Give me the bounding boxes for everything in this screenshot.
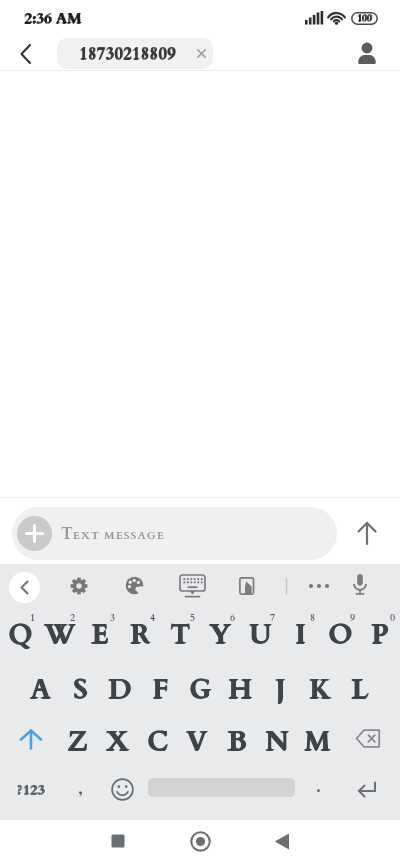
staticText: ?123 <box>18 781 46 799</box>
staticText: U <box>249 617 272 649</box>
button[interactable]: Z <box>57 723 97 755</box>
button[interactable]: X <box>97 723 137 755</box>
button[interactable]: D <box>100 671 140 703</box>
staticText: H <box>228 671 252 703</box>
staticText: Z <box>67 724 88 756</box>
button[interactable]: J <box>260 671 300 703</box>
button[interactable] <box>16 42 38 66</box>
button[interactable]: A <box>20 671 60 703</box>
button[interactable] <box>110 777 135 802</box>
staticText: W <box>44 617 76 649</box>
button[interactable]: Q <box>0 616 40 648</box>
staticText: S <box>74 671 89 703</box>
staticText: Y <box>209 617 231 649</box>
staticText: M <box>304 723 331 755</box>
button[interactable]: I <box>280 616 320 648</box>
button[interactable] <box>196 48 207 59</box>
button[interactable] <box>190 831 211 852</box>
button[interactable]: E <box>80 616 120 648</box>
button[interactable]: , <box>68 774 92 802</box>
staticText: X <box>106 723 129 755</box>
button[interactable]: S <box>60 671 100 703</box>
button[interactable] <box>111 834 125 848</box>
button[interactable] <box>16 727 46 751</box>
staticText: E <box>91 616 109 648</box>
staticText: TEXT MESSAGE <box>61 523 165 545</box>
button[interactable] <box>17 516 52 551</box>
button[interactable]: M <box>297 723 337 755</box>
button[interactable]: R <box>120 616 160 648</box>
staticText: 100 <box>357 12 372 25</box>
staticText: I <box>295 617 306 649</box>
button[interactable] <box>125 576 144 595</box>
button[interactable]: T <box>160 616 200 648</box>
staticText: M <box>305 723 332 755</box>
button[interactable]: L <box>340 671 380 703</box>
staticText: P <box>371 617 389 649</box>
staticText: U <box>250 616 273 648</box>
button[interactable]: O <box>320 616 360 648</box>
staticText: X <box>107 723 130 755</box>
button[interactable]: W <box>40 616 80 648</box>
staticText: G <box>190 671 212 703</box>
staticText: 0 <box>390 611 396 625</box>
staticText: S <box>73 671 88 703</box>
staticText: K <box>309 672 331 704</box>
button[interactable] <box>355 729 382 748</box>
button[interactable]: Y <box>200 616 240 648</box>
button[interactable]: U <box>240 616 280 648</box>
staticText: D <box>108 671 132 703</box>
staticText: 100 <box>358 12 373 25</box>
button[interactable]: G <box>180 671 220 703</box>
staticText: W <box>45 616 77 648</box>
staticText: L <box>351 671 369 703</box>
staticText: W <box>44 616 76 648</box>
button[interactable] <box>355 41 379 65</box>
button[interactable]: ?123 <box>8 777 54 803</box>
button[interactable] <box>274 833 290 850</box>
staticText: V <box>186 724 208 756</box>
staticText: N <box>265 724 289 756</box>
button[interactable]: B <box>217 723 257 755</box>
staticText: C <box>148 723 169 755</box>
staticText: J <box>275 671 286 703</box>
staticText: I <box>296 616 307 648</box>
staticText: P <box>371 616 389 648</box>
staticText: 2:36 AM <box>24 8 82 28</box>
button[interactable]: C <box>137 723 177 755</box>
button[interactable] <box>356 779 380 799</box>
staticText: N <box>266 723 290 755</box>
button[interactable] <box>9 572 40 603</box>
staticText: D <box>108 672 132 704</box>
staticText: H <box>228 672 252 704</box>
staticText: Z <box>67 723 88 755</box>
button[interactable] <box>308 583 330 589</box>
button[interactable] <box>351 573 369 598</box>
staticText: E <box>91 617 109 649</box>
staticText: K <box>309 671 331 703</box>
button[interactable]: F <box>140 671 180 703</box>
staticText: M <box>304 724 331 756</box>
button[interactable]: K <box>300 671 340 703</box>
staticText: 7 <box>270 611 276 625</box>
button[interactable]: H <box>220 671 260 703</box>
staticText: T <box>171 616 191 648</box>
button[interactable] <box>12 507 337 560</box>
staticText: A <box>30 671 51 703</box>
button[interactable] <box>179 574 206 598</box>
staticText: . <box>316 775 321 798</box>
button[interactable] <box>355 519 379 547</box>
button[interactable]: N <box>257 723 297 755</box>
staticText: Q <box>9 616 34 648</box>
staticText: B <box>227 724 247 756</box>
button[interactable] <box>57 38 213 69</box>
button[interactable]: P <box>360 616 400 648</box>
staticText: E <box>92 616 110 648</box>
button[interactable] <box>239 577 257 596</box>
staticText: , <box>78 777 83 800</box>
staticText: 1 <box>30 611 36 625</box>
button[interactable] <box>69 576 89 596</box>
button[interactable]: . <box>306 772 330 800</box>
button[interactable]: V <box>177 723 217 755</box>
